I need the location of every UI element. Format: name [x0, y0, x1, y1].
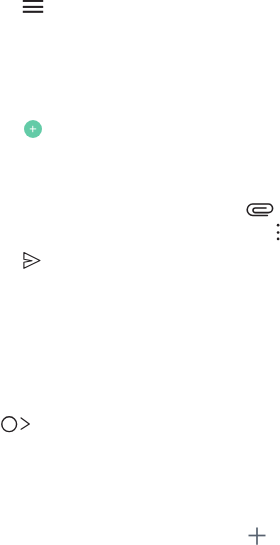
button[interactable]: Next [0, 404, 40, 446]
button[interactable]: More options [264, 212, 280, 252]
button[interactable]: Menu [12, 0, 54, 30]
button[interactable]: Attach file [238, 192, 280, 226]
button[interactable]: Add [24, 120, 42, 138]
button[interactable]: Add item [236, 514, 278, 545]
button[interactable]: Send [11, 239, 53, 281]
